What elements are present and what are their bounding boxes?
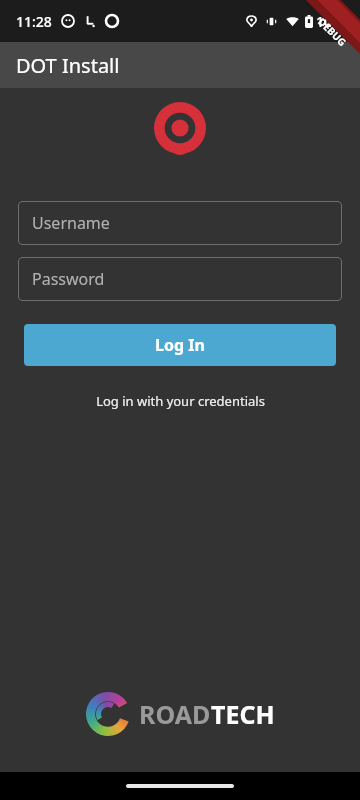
button[interactable]: Password <box>18 257 342 301</box>
staticText: Log in with your credentials <box>96 392 265 410</box>
other: Roadtech logo <box>86 692 130 736</box>
staticText: ROAD <box>139 697 211 731</box>
staticText: 100% <box>316 12 352 31</box>
staticText: DEBUG <box>315 15 350 49</box>
staticText: Log In <box>155 334 205 356</box>
staticText: TECH <box>211 697 275 731</box>
button[interactable]: Log In <box>24 324 336 366</box>
button[interactable]: Username <box>18 201 342 245</box>
staticText: Username <box>32 212 110 234</box>
staticText: DOT Install <box>16 52 120 79</box>
staticText: 11:28 <box>16 12 52 31</box>
other: DOT Install logo <box>154 102 206 164</box>
staticText: Password <box>32 268 105 290</box>
